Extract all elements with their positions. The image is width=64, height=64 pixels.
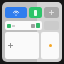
button[interactable]: Settings: [5, 32, 39, 59]
button[interactable]: Media controls: [5, 21, 42, 30]
button[interactable]: Battery Saver: [29, 7, 42, 18]
button[interactable]: Add tile: [44, 7, 59, 18]
button[interactable]: Wi-Fi: [5, 7, 27, 18]
button[interactable]: Notification: [41, 32, 59, 59]
